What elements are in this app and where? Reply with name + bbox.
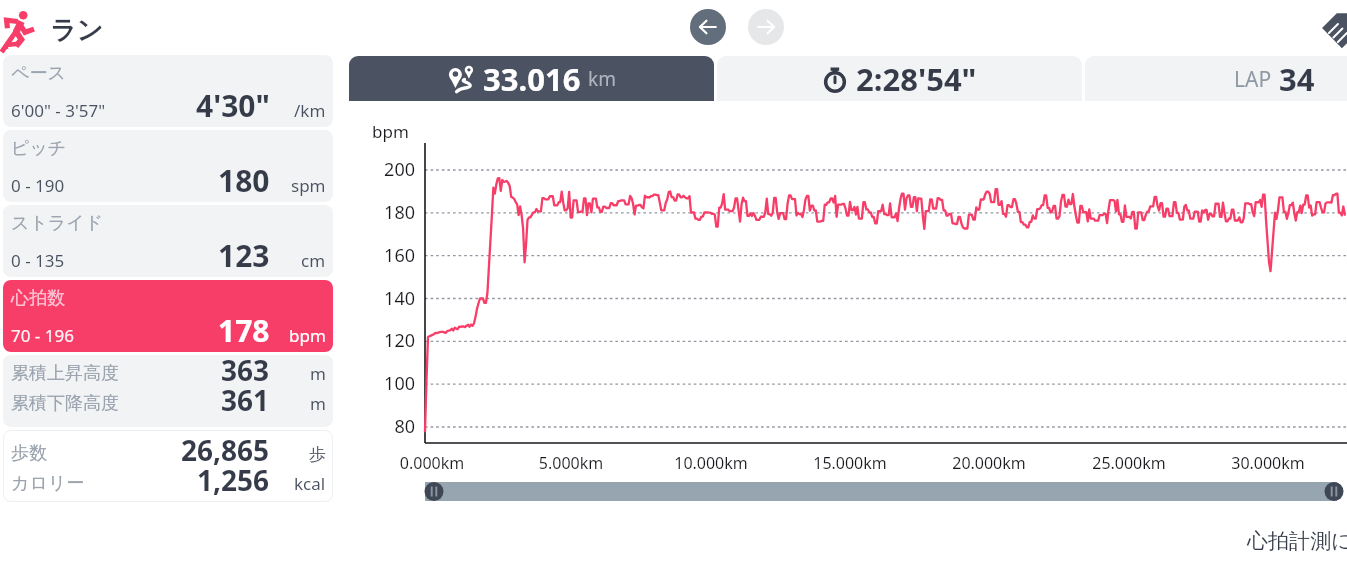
staticText: 80 xyxy=(355,414,415,439)
staticText: 5.000km xyxy=(521,452,621,474)
staticText: ストライド xyxy=(11,212,104,235)
button[interactable]: Tag xyxy=(1316,5,1347,51)
staticText: 120 xyxy=(355,328,415,353)
staticText: 2:28'54" xyxy=(856,58,977,100)
staticText: 歩 xyxy=(309,444,326,465)
staticText: 33.016 xyxy=(483,58,581,100)
staticText: km xyxy=(588,66,616,92)
staticText: 70 - 196 xyxy=(11,324,74,347)
button[interactable]: Previous xyxy=(690,9,726,45)
staticText: 363 xyxy=(221,355,270,389)
staticText: 180 xyxy=(218,160,270,201)
staticText: m xyxy=(310,392,326,415)
staticText: 累積上昇高度 xyxy=(11,362,119,385)
button[interactable]: Range end handle xyxy=(1325,482,1344,501)
staticText: 歩数 xyxy=(11,442,47,465)
staticText: カロリー xyxy=(11,472,85,495)
staticText: 178 xyxy=(218,310,270,351)
staticText: 0 - 190 xyxy=(11,174,65,197)
button[interactable]: Range start handle xyxy=(425,482,444,501)
staticText: 34 xyxy=(1279,58,1315,100)
staticText: 26,865 xyxy=(181,431,270,469)
staticText: 123 xyxy=(218,235,270,276)
staticText: 100 xyxy=(355,371,415,396)
button[interactable]: 33.016 xyxy=(349,56,714,101)
staticText: 4'30" xyxy=(196,85,270,126)
staticText: 心拍数 xyxy=(11,287,65,310)
staticText: 累積下降高度 xyxy=(11,392,119,415)
staticText: m xyxy=(310,362,326,385)
staticText: 10.000km xyxy=(661,452,761,474)
button[interactable]: 歩数 xyxy=(3,430,333,502)
staticText: 0.000km xyxy=(382,452,482,474)
button[interactable]: ピッチ xyxy=(3,130,333,202)
button[interactable]: 心拍数 xyxy=(3,280,333,352)
button[interactable]: Next xyxy=(748,9,784,45)
staticText: cm xyxy=(301,249,326,272)
button[interactable]: 2:28'54" xyxy=(717,56,1082,101)
staticText: 25.000km xyxy=(1079,452,1179,474)
staticText: 6'00" - 3'57" xyxy=(11,99,106,122)
staticText: 361 xyxy=(221,381,270,419)
staticText: ピッチ xyxy=(11,137,67,160)
staticText: LAP xyxy=(1234,65,1272,94)
staticText: 180 xyxy=(355,200,415,225)
staticText: bpm xyxy=(289,324,326,347)
staticText: 30.000km xyxy=(1218,452,1318,474)
staticText: ペース xyxy=(11,62,66,85)
button[interactable]: 累積上昇高度 xyxy=(3,355,333,427)
staticText: 1,256 xyxy=(197,461,270,499)
staticText: kcal xyxy=(294,472,326,495)
staticText: 200 xyxy=(355,157,415,182)
staticText: 心拍計測に xyxy=(1247,528,1347,554)
button[interactable]: ペース xyxy=(3,55,333,127)
staticText: ラン xyxy=(50,14,104,47)
staticText: 0 - 135 xyxy=(11,249,65,272)
staticText: /km xyxy=(294,99,326,122)
button[interactable]: ストライド xyxy=(3,205,333,277)
staticText: 160 xyxy=(355,243,415,268)
button[interactable]: LAP xyxy=(1085,56,1347,101)
staticText: spm xyxy=(291,174,326,197)
staticText: 15.000km xyxy=(800,452,900,474)
staticText: 20.000km xyxy=(939,452,1039,474)
staticText: bpm xyxy=(372,120,409,143)
staticText: 140 xyxy=(355,286,415,311)
